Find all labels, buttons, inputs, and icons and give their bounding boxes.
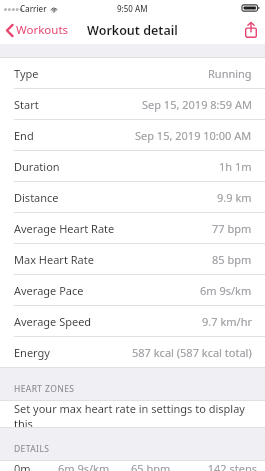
staticText: Average Pace	[14, 283, 84, 298]
button[interactable]: Average Heart Rate	[0, 213, 265, 243]
staticText: Energy	[14, 345, 50, 360]
button[interactable]: Start	[0, 89, 265, 119]
staticText: 142 steps	[194, 461, 257, 471]
staticText: Max Heart Rate	[14, 252, 94, 267]
button[interactable]: 0m	[0, 461, 265, 471]
staticText: Set your max heart rate in settings to d…	[14, 401, 255, 427]
button[interactable]: Set your max heart rate in settings to d…	[0, 401, 265, 427]
staticText: 9.7 km/hr	[202, 314, 252, 329]
staticText: 85 bpm	[212, 252, 252, 267]
staticText: 9:50 AM	[117, 3, 148, 14]
button[interactable]: Duration	[0, 151, 265, 181]
staticText: End	[14, 128, 34, 143]
staticText: 1h 1m	[219, 159, 252, 174]
staticText: Duration	[14, 159, 60, 174]
button[interactable]: Distance	[0, 182, 265, 212]
staticText: HEART ZONES	[14, 383, 75, 395]
button[interactable]: Max Heart Rate	[0, 244, 265, 274]
staticText: 0m	[14, 461, 58, 471]
button[interactable]: Average Pace	[0, 275, 265, 305]
staticText: Workouts	[16, 22, 69, 38]
staticText: Average Speed	[14, 314, 92, 329]
staticText: 9.9 km	[217, 190, 252, 205]
staticText: Sep 15, 2019 8:59 AM	[142, 97, 252, 112]
staticText: 6m 9s/km	[200, 283, 252, 298]
staticText: Average Heart Rate	[14, 221, 115, 236]
staticText: Running	[208, 66, 252, 81]
staticText: Carrier	[20, 3, 47, 14]
staticText: Sep 15, 2019 10:00 AM	[135, 128, 252, 143]
staticText: DETAILS	[14, 443, 50, 455]
button[interactable]: Energy	[0, 337, 265, 367]
button[interactable]: Share	[237, 18, 265, 42]
staticText: 65 bpm	[131, 461, 194, 471]
staticText: Type	[14, 66, 39, 81]
button[interactable]: Workouts	[0, 18, 75, 42]
button[interactable]: End	[0, 120, 265, 150]
staticText: 77 bpm	[212, 221, 252, 236]
button[interactable]: Average Speed	[0, 306, 265, 336]
button[interactable]: Type	[0, 58, 265, 88]
staticText: 587 kcal (587 kcal total)	[132, 345, 252, 360]
staticText: Workout detail	[87, 22, 178, 39]
staticText: Start	[14, 97, 39, 112]
staticText: 6m 9s/km	[58, 461, 131, 471]
staticText: Distance	[14, 190, 59, 205]
